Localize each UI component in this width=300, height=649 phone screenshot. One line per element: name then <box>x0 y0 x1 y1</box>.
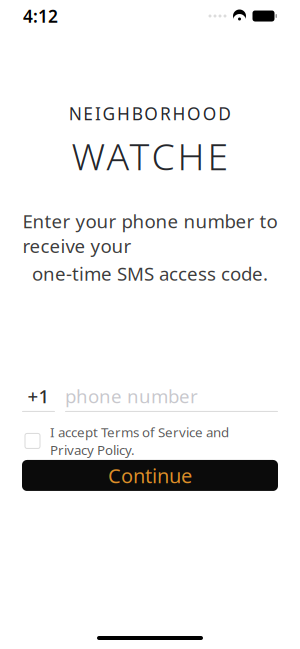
button[interactable]: Continue <box>22 460 278 491</box>
staticText: Continue <box>108 462 192 489</box>
staticText: Enter your phone number to receive your <box>22 209 277 258</box>
staticText: 4:12 <box>23 4 58 27</box>
staticText: phone number <box>65 384 198 408</box>
staticText: one-time SMS access code. <box>32 261 268 286</box>
staticText: NEIGHBORHOOD <box>69 102 231 125</box>
staticText: WATCHE <box>71 131 228 181</box>
staticText: +1 <box>27 384 49 408</box>
button[interactable]: I accept Terms of Service and Privacy Po… <box>0 430 300 452</box>
staticText: I accept Terms of Service and Privacy Po… <box>50 423 229 459</box>
